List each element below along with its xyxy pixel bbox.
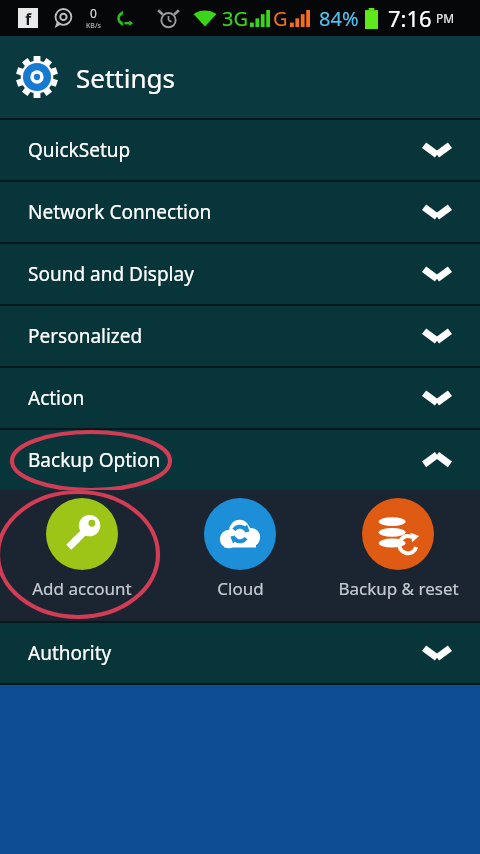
button[interactable]: Backup Option xyxy=(0,430,480,490)
staticText: Network Connection xyxy=(28,199,212,225)
staticText: Add account xyxy=(32,577,132,600)
staticText: Settings xyxy=(76,60,175,95)
staticText: 84% xyxy=(319,5,359,32)
staticText: KB/s xyxy=(86,21,101,31)
button[interactable]: Backup & reset xyxy=(322,498,474,600)
button[interactable]: QuickSetup xyxy=(0,120,480,180)
staticText: PM xyxy=(436,10,455,26)
button[interactable]: Add account xyxy=(6,498,158,600)
staticText: Backup & reset xyxy=(338,577,459,600)
staticText: QuickSetup xyxy=(28,137,131,163)
staticText: G xyxy=(273,5,288,32)
staticText: Backup Option xyxy=(28,447,161,473)
button[interactable]: Action xyxy=(0,368,480,428)
other: Settings icon xyxy=(14,54,60,100)
staticText: 3G xyxy=(222,5,248,32)
button[interactable]: Cloud xyxy=(164,498,316,600)
button[interactable]: Network Connection xyxy=(0,182,480,242)
staticText: f xyxy=(25,8,32,28)
staticText: 7:16 xyxy=(388,3,432,33)
staticText: Cloud xyxy=(217,577,264,600)
staticText: Personalized xyxy=(28,323,143,349)
staticText: Sound and Display xyxy=(28,261,194,287)
button[interactable]: Personalized xyxy=(0,306,480,366)
staticText: Action xyxy=(28,385,85,411)
button[interactable]: Authority xyxy=(0,623,480,683)
staticText: Authority xyxy=(28,640,112,666)
button[interactable]: Sound and Display xyxy=(0,244,480,304)
staticText: 0 xyxy=(90,5,97,21)
